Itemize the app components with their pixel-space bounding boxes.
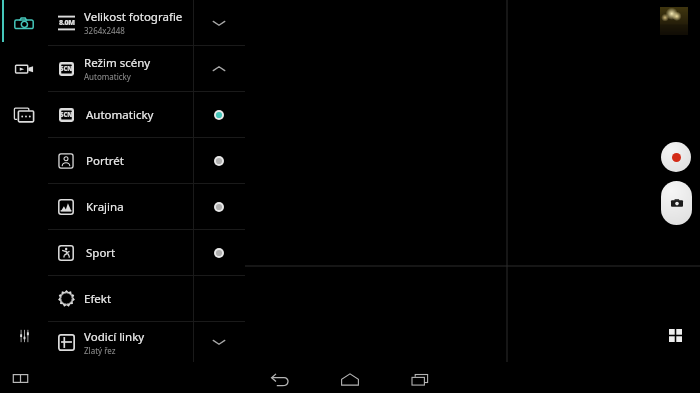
- staticText: SCN: [60, 65, 73, 73]
- staticText: Sport: [86, 245, 193, 261]
- button[interactable]: Split screen: [7, 365, 33, 391]
- button[interactable]: More modes: [0, 92, 48, 138]
- button[interactable]: Record video: [661, 142, 691, 172]
- button[interactable]: SCN: [48, 46, 245, 91]
- staticText: Režim scény: [84, 55, 151, 71]
- staticText: Automaticky: [86, 107, 193, 123]
- staticText: Zlatý řez: [84, 345, 116, 356]
- button[interactable]: Settings: [0, 313, 48, 359]
- staticText: Efekt: [84, 291, 112, 307]
- button[interactable]: Gallery thumbnail: [660, 7, 688, 35]
- button[interactable]: Efekt: [48, 276, 245, 321]
- button[interactable]: Video mode: [0, 46, 48, 92]
- button[interactable]: Take photo: [661, 181, 692, 225]
- staticText: SCN: [60, 111, 73, 119]
- staticText: 3264x2448: [84, 25, 125, 36]
- button[interactable]: Recents: [385, 362, 455, 393]
- button[interactable]: SCN: [48, 92, 245, 137]
- staticText: Velikost fotografie: [84, 9, 183, 25]
- button[interactable]: Grid: [665, 325, 685, 345]
- button[interactable]: 8.0M: [48, 0, 245, 45]
- button[interactable]: Home: [315, 362, 385, 393]
- button[interactable]: Sport: [48, 230, 245, 275]
- button[interactable]: Krajina: [48, 184, 245, 229]
- button[interactable]: Portrét: [48, 138, 245, 183]
- button[interactable]: Vodicí linky: [48, 322, 245, 362]
- button[interactable]: Back: [245, 362, 315, 393]
- staticText: Krajina: [86, 199, 193, 215]
- button[interactable]: Photo mode: [0, 0, 48, 46]
- staticText: 8.0M: [59, 18, 75, 28]
- staticText: Portrét: [86, 153, 193, 169]
- staticText: Vodicí linky: [84, 329, 145, 345]
- staticText: Automaticky: [84, 71, 131, 82]
